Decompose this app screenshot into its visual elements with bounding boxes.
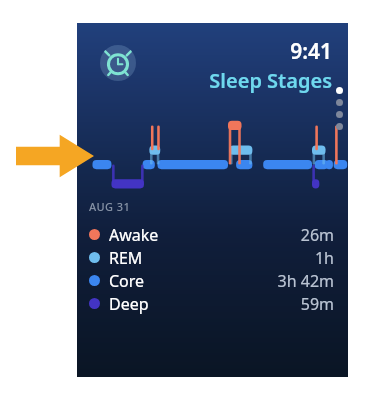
button[interactable]: Awake: [89, 223, 334, 246]
staticText: Deep: [109, 293, 149, 315]
staticText: 9:41: [290, 37, 332, 66]
staticText: 3h 42m: [277, 270, 334, 292]
button[interactable]: Core: [89, 269, 334, 292]
button[interactable]: Deep: [89, 292, 334, 315]
button[interactable]: Alarm: [100, 45, 136, 81]
staticText: Awake: [109, 224, 159, 246]
staticText: REM: [109, 247, 143, 269]
staticText: AUG 31: [89, 199, 131, 214]
staticText: 1h: [314, 247, 334, 269]
staticText: Core: [109, 270, 145, 292]
staticText: Sleep Stages: [209, 67, 332, 94]
staticText: 26m: [300, 224, 334, 246]
staticText: 59m: [300, 293, 334, 315]
button[interactable]: REM: [89, 246, 334, 269]
button[interactable]: Sleep stages chart: [83, 115, 354, 195]
